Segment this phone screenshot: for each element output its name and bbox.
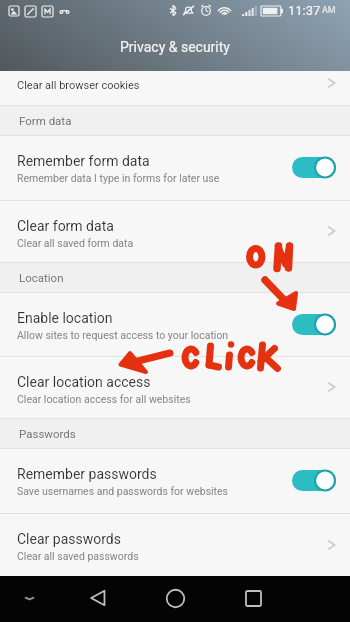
staticText: Clear form data <box>17 218 114 234</box>
staticText: Clear passwords <box>17 531 121 547</box>
staticText: Enable location <box>17 310 113 326</box>
staticText: Remember form data <box>17 153 150 169</box>
button[interactable]: Home <box>152 576 199 622</box>
button[interactable]: Back <box>75 576 121 622</box>
staticText: Save usernames and passwords for website… <box>17 485 229 497</box>
staticText: Remember passwords <box>17 466 157 482</box>
button[interactable]: Clear location access <box>0 357 350 418</box>
staticText: Clear all browser cookies <box>17 79 140 92</box>
staticText: Clear location access for all websites <box>17 393 191 405</box>
button[interactable]: Remember form data <box>0 136 350 200</box>
staticText: Clear all saved passwords <box>17 550 139 562</box>
button[interactable]: Toggle on <box>292 157 336 178</box>
staticText: Privacy & security <box>0 39 350 55</box>
staticText: 11:37 <box>288 3 321 18</box>
staticText: Form data <box>19 114 72 127</box>
button[interactable]: Enable location <box>0 293 350 356</box>
button[interactable]: Hide keyboard <box>11 576 48 622</box>
button[interactable]: Clear all browser cookies <box>0 71 350 105</box>
button[interactable]: Clear passwords <box>0 514 350 576</box>
button[interactable]: Toggle on <box>292 470 336 491</box>
button[interactable]: Recents <box>232 576 275 622</box>
staticText: Clear location access <box>17 374 151 390</box>
button[interactable]: Toggle on <box>292 314 336 335</box>
button[interactable]: Clear form data <box>0 201 350 262</box>
staticText: Location <box>19 271 64 284</box>
staticText: Remember data I type in forms for later … <box>17 172 220 184</box>
staticText: Passwords <box>19 427 76 440</box>
button[interactable]: Remember passwords <box>0 449 350 513</box>
staticText: AM <box>322 5 336 16</box>
staticText: Allow sites to request access to your lo… <box>17 329 229 341</box>
staticText: Clear all saved form data <box>17 237 134 249</box>
